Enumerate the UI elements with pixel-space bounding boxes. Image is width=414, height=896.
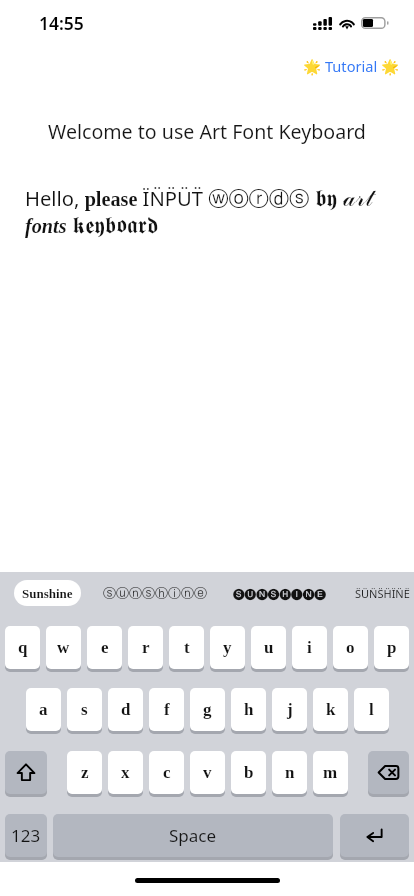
staticText: 🌟 Tutorial 🌟 (303, 56, 400, 76)
button[interactable]: p (374, 626, 409, 671)
staticText: e (101, 638, 109, 657)
button[interactable]: Space (53, 814, 333, 859)
staticText: p (387, 638, 397, 657)
button[interactable]: g (190, 688, 225, 733)
button[interactable]: 123 (5, 814, 47, 859)
button[interactable]: k (313, 688, 348, 733)
button[interactable]: w (46, 626, 81, 671)
staticText: o (346, 638, 355, 657)
button[interactable]: l (354, 688, 389, 733)
staticText: S̈ÜN̈S̈ḦÏN̈Ë (355, 586, 410, 601)
staticText: g (203, 700, 212, 719)
staticText: Welcome to use Art Font Keyboard (0, 118, 414, 145)
staticText: s (81, 700, 88, 719)
button[interactable]: 🌟 Tutorial 🌟 (301, 54, 402, 78)
button[interactable]: r (128, 626, 163, 671)
button[interactable]: h (231, 688, 266, 733)
button[interactable]: ⓢⓤⓝⓢⓗⓘⓝⓔ (103, 580, 207, 606)
staticText: u (264, 638, 274, 657)
staticText: x (121, 763, 130, 782)
staticText: m (323, 763, 338, 782)
button[interactable]: Return (340, 814, 409, 859)
staticText: i (307, 638, 312, 657)
button[interactable]: f (149, 688, 184, 733)
staticText: l (369, 700, 374, 719)
staticText: h (244, 700, 254, 719)
staticText: q (18, 638, 28, 657)
staticText: z (81, 763, 89, 782)
staticText: v (203, 763, 212, 782)
button[interactable]: Shift (5, 751, 47, 796)
staticText: n (285, 763, 295, 782)
button[interactable]: j (272, 688, 307, 733)
button[interactable]: t (169, 626, 204, 671)
staticText: w (57, 638, 70, 657)
button[interactable]: a (26, 688, 61, 733)
staticText: c (163, 763, 171, 782)
staticText: Hello, please ÏN̈P̈ÜT̈ ⓦⓞⓡⓓⓢ 𝖇𝖞 𝒶𝓇𝓉 fo… (25, 181, 398, 239)
button[interactable]: u (251, 626, 286, 671)
button[interactable]: n (272, 751, 307, 796)
button[interactable]: i (292, 626, 327, 671)
staticText: 🅢🅤🅝🅢🅗🅘🅝🅔 (233, 588, 326, 599)
staticText: t (184, 638, 190, 657)
button[interactable]: 🅢🅤🅝🅢🅗🅘🅝🅔 (233, 580, 326, 606)
button[interactable]: S̈ÜN̈S̈ḦÏN̈Ë (355, 580, 410, 606)
button[interactable]: v (190, 751, 225, 796)
button[interactable]: b (231, 751, 266, 796)
staticText: ⓢⓤⓝⓢⓗⓘⓝⓔ (103, 585, 207, 601)
button[interactable]: y (210, 626, 245, 671)
button[interactable]: s (67, 688, 102, 733)
staticText: f (164, 700, 170, 719)
button[interactable]: Backspace (368, 751, 409, 796)
button[interactable]: c (149, 751, 184, 796)
staticText: r (142, 638, 150, 657)
staticText: 123 (11, 824, 41, 847)
staticText: 14:55 (39, 11, 84, 35)
staticText: k (326, 700, 336, 719)
button[interactable]: o (333, 626, 368, 671)
button[interactable]: q (5, 626, 40, 671)
button[interactable]: Sunshine (14, 580, 81, 606)
button[interactable]: z (67, 751, 102, 796)
button[interactable]: m (313, 751, 348, 796)
staticText: j (287, 700, 293, 719)
staticText: a (39, 700, 48, 719)
button[interactable]: d (108, 688, 143, 733)
staticText: b (244, 763, 254, 782)
button[interactable]: e (87, 626, 122, 671)
staticText: Space (169, 824, 217, 847)
staticText: y (223, 638, 232, 657)
staticText: Sunshine (22, 586, 73, 600)
staticText: d (121, 700, 131, 719)
button[interactable]: x (108, 751, 143, 796)
